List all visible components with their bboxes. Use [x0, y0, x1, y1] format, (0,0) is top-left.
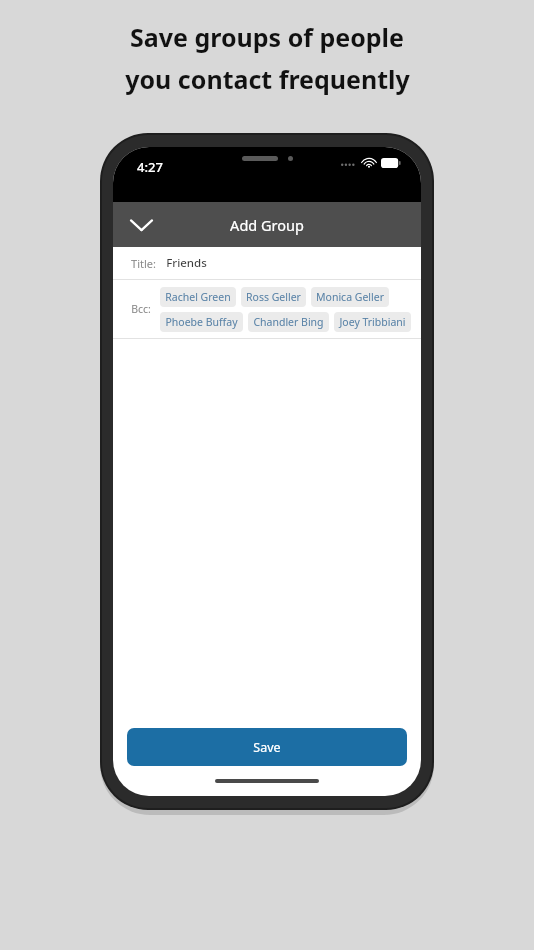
button[interactable]: Chandler Bing	[248, 312, 329, 332]
staticText: Monica Geller	[316, 290, 384, 304]
button[interactable]: Phoebe Buffay	[160, 312, 243, 332]
staticText: Joey Tribbiani	[339, 315, 406, 329]
staticText: Title:	[131, 256, 156, 271]
button[interactable]: Monica Geller	[311, 287, 389, 307]
staticText: 4:27	[137, 158, 163, 176]
staticText: Rachel Green	[165, 290, 231, 304]
staticText: you contact frequently	[125, 62, 410, 96]
staticText: Add Group	[230, 215, 304, 235]
staticText: Friends	[166, 255, 207, 271]
button[interactable]: Title:	[113, 247, 421, 279]
button[interactable]: Close	[119, 203, 163, 247]
button[interactable]: Joey Tribbiani	[334, 312, 411, 332]
staticText: Ross Geller	[246, 290, 301, 304]
staticText: Bcc:	[131, 302, 151, 316]
staticText: Save groups of people	[130, 20, 404, 54]
staticText: Chandler Bing	[253, 315, 324, 329]
button[interactable]: Bcc:	[113, 280, 421, 338]
staticText: Phoebe Buffay	[165, 315, 238, 329]
button[interactable]: Ross Geller	[241, 287, 306, 307]
staticText: Save	[253, 739, 281, 756]
button[interactable]: Rachel Green	[160, 287, 236, 307]
button[interactable]: Save	[127, 728, 407, 766]
